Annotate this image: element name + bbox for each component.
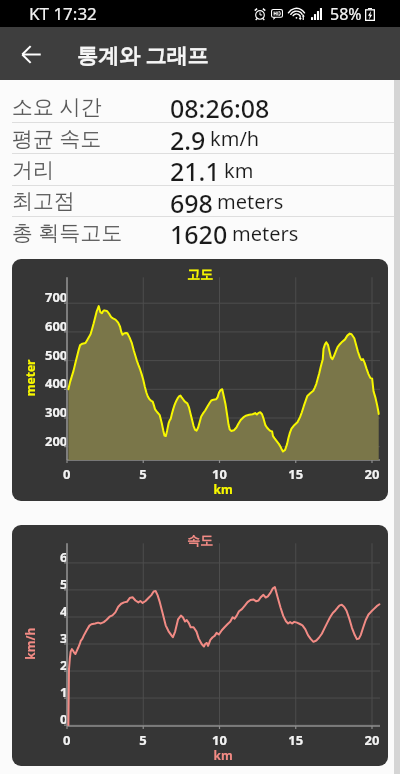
staticText: km/h [210, 125, 260, 152]
button[interactable]: 평균 속도 [0, 123, 400, 153]
staticText: meters [217, 188, 284, 215]
button[interactable] [12, 259, 388, 501]
button[interactable]: 소요 시간 [0, 91, 400, 122]
staticText: 총 획득고도 [12, 218, 170, 247]
staticText: KT 17:32 [29, 2, 97, 25]
staticText: 평균 속도 [12, 124, 170, 153]
staticText: 소요 시간 [12, 92, 170, 121]
button[interactable]: 최고점 [0, 186, 400, 216]
button[interactable]: Back [14, 37, 48, 71]
staticText: 08:26:08 [170, 91, 270, 122]
staticText: 2.9 [170, 123, 206, 153]
staticText: km [224, 157, 254, 184]
staticText: 698 [170, 186, 213, 216]
staticText: 21.1 [170, 154, 220, 185]
staticText: 거리 [12, 157, 170, 183]
staticText: 1620 [170, 217, 228, 248]
button[interactable]: 총 획득고도 [0, 217, 400, 248]
staticText: 통계와 그래프 [77, 41, 209, 70]
staticText: meters [232, 220, 299, 247]
staticText: 58% [330, 3, 362, 25]
button[interactable]: 거리 [0, 154, 400, 185]
staticText: 최고점 [12, 188, 170, 214]
button[interactable] [12, 525, 388, 766]
